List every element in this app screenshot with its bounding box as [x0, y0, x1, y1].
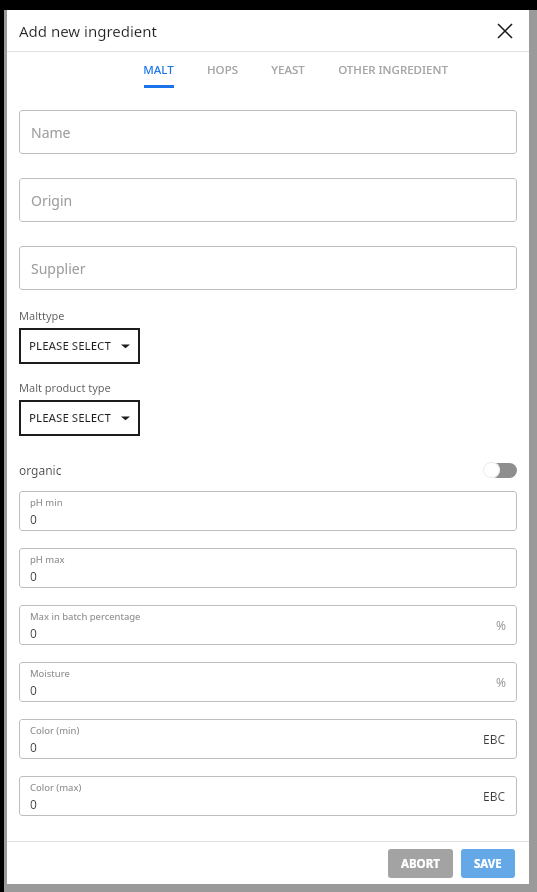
button[interactable]: Name — [19, 110, 517, 154]
staticText: 0 — [30, 739, 37, 755]
staticText: Color (max) — [30, 781, 82, 794]
staticText: PLEASE SELECT — [29, 410, 111, 426]
staticText: Origin — [31, 191, 73, 210]
staticText: 0 — [30, 511, 37, 527]
staticText: % — [496, 674, 506, 690]
other: organic toggle — [483, 462, 517, 478]
staticText: organic — [19, 462, 62, 478]
button[interactable]: Color (max) — [19, 776, 517, 816]
button[interactable]: organic — [19, 459, 517, 481]
staticText: Max in batch percentage — [30, 610, 141, 623]
button[interactable]: YEAST — [261, 62, 315, 88]
staticText: pH max — [30, 553, 65, 566]
button[interactable]: pH min — [19, 491, 517, 531]
staticText: Color (min) — [30, 724, 80, 737]
button[interactable]: PLEASE SELECT — [19, 400, 140, 436]
button[interactable]: Abort — [388, 849, 453, 878]
button[interactable]: Max in batch percentage — [19, 605, 517, 645]
button[interactable]: HOPS — [197, 62, 248, 88]
button[interactable]: Close — [489, 15, 521, 47]
staticText: Malttype — [19, 308, 65, 323]
button[interactable]: Color (min) — [19, 719, 517, 759]
staticText: PLEASE SELECT — [29, 338, 111, 354]
staticText: 0 — [30, 625, 37, 641]
staticText: HOPS — [207, 62, 238, 78]
button[interactable]: pH max — [19, 548, 517, 588]
button[interactable]: Save — [461, 849, 515, 878]
staticText: YEAST — [271, 62, 305, 78]
staticText: MALT — [143, 62, 174, 78]
staticText: ABORT — [401, 856, 440, 872]
staticText: SAVE — [474, 856, 502, 872]
staticText: 0 — [30, 682, 37, 698]
staticText: pH min — [30, 496, 63, 509]
staticText: Add new ingredient — [19, 21, 158, 41]
button[interactable]: Origin — [19, 178, 517, 222]
staticText: 0 — [30, 796, 37, 812]
button[interactable]: OTHER INGREDIENT — [328, 62, 458, 88]
staticText: % — [496, 617, 506, 633]
staticText: EBC — [483, 731, 506, 747]
staticText: Moisture — [30, 667, 70, 680]
staticText: OTHER INGREDIENT — [338, 62, 448, 78]
button[interactable]: MALT — [133, 62, 184, 88]
staticText: EBC — [483, 788, 506, 804]
staticText: Name — [31, 123, 71, 142]
staticText: Malt product type — [19, 380, 111, 395]
button[interactable]: PLEASE SELECT — [19, 328, 140, 364]
button[interactable]: Supplier — [19, 246, 517, 290]
staticText: 0 — [30, 568, 37, 584]
button[interactable]: Moisture — [19, 662, 517, 702]
staticText: Supplier — [31, 259, 86, 278]
